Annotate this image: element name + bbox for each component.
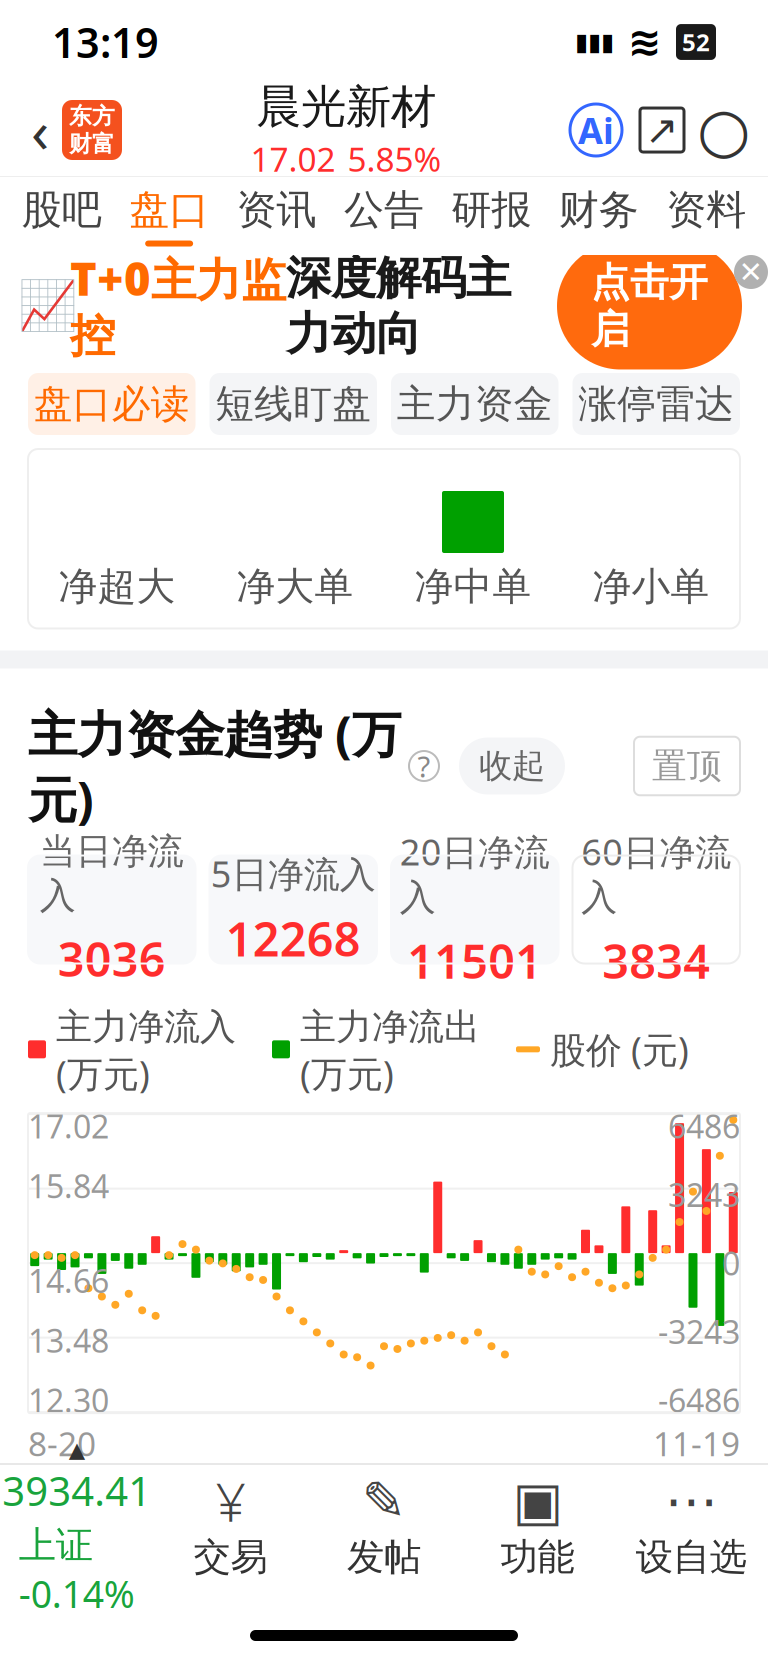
staticText: 17.02 — [28, 1105, 109, 1147]
staticText: 财务 — [559, 185, 639, 234]
staticText: T+0主力监控 — [70, 248, 286, 364]
button[interactable]: 股吧 — [8, 177, 115, 255]
staticText: 盘口 — [129, 185, 209, 234]
staticText: 功能 — [501, 1534, 575, 1580]
staticText: ○ — [697, 95, 751, 165]
staticText: 资讯 — [237, 185, 317, 234]
button[interactable]: 关闭广告 — [734, 255, 768, 289]
staticText: 52 — [682, 26, 710, 58]
staticText: 3036 — [58, 928, 166, 990]
staticText: -3243 — [658, 1310, 740, 1353]
staticText: 置顶 — [652, 1552, 722, 1595]
staticText: 主力净流入 (万元) — [56, 1001, 236, 1097]
staticText: 12.30 — [28, 1379, 109, 1421]
staticText: ▣ — [513, 1471, 563, 1531]
button[interactable]: AI 助手 — [570, 104, 622, 156]
staticText: 6486 — [668, 1105, 740, 1147]
staticText: 公告 — [344, 185, 424, 234]
staticText: 涨停雷达 — [578, 380, 734, 428]
staticText: -6486 — [658, 1379, 740, 1421]
staticText: ▲ — [69, 1438, 85, 1462]
button[interactable]: 公告 — [330, 177, 438, 255]
button[interactable]: 60日净流入 — [572, 855, 740, 963]
staticText: 发帖 — [347, 1534, 421, 1580]
staticText: 深度解码主力动向 — [286, 250, 511, 362]
staticText: 8-20 — [28, 1421, 96, 1465]
staticText: 11-19 — [653, 1421, 740, 1465]
staticText: ⋯ — [665, 1471, 718, 1531]
staticText: 5日净流入 — [211, 850, 376, 897]
staticText: 3934.41 — [2, 1464, 151, 1517]
staticText: 晨光新材 — [256, 79, 436, 135]
staticText: 11501 — [407, 929, 542, 991]
button[interactable]: 资料 — [653, 177, 760, 255]
staticText: 资料 — [666, 185, 746, 234]
staticText: 设自选 — [636, 1534, 747, 1580]
staticText: 3834 — [602, 929, 710, 991]
staticText: 📈 — [18, 279, 78, 333]
staticText: 成交明细 — [28, 1543, 224, 1604]
staticText: 13:19 — [52, 15, 159, 69]
staticText: 上证 -0.14% — [19, 1519, 135, 1618]
button[interactable]: 东方财富 — [62, 100, 122, 160]
button[interactable]: 主力资金 — [391, 373, 558, 435]
staticText: ¥ — [215, 1466, 245, 1536]
button[interactable]: 盘口必读 — [28, 373, 195, 435]
button[interactable]: ▲ — [0, 1438, 154, 1618]
staticText: 净中单 — [414, 563, 531, 610]
button[interactable]: 资讯 — [223, 177, 330, 255]
staticText: 净超大 — [58, 563, 175, 610]
staticText: 财富 — [69, 130, 115, 158]
button[interactable]: 当日净流入 — [28, 855, 195, 963]
staticText: 主力资金 — [397, 380, 553, 428]
staticText: 短线盯盘 — [215, 380, 371, 428]
staticText: ‹ — [31, 91, 49, 169]
staticText: 13.48 — [28, 1319, 109, 1362]
staticText: ? — [417, 746, 430, 785]
button[interactable]: 盘口 — [115, 177, 223, 255]
button[interactable]: 财务 — [545, 177, 652, 255]
button[interactable]: ¥ — [154, 1476, 307, 1580]
staticText: ▮▮▮ — [575, 28, 614, 56]
staticText: 收起 — [479, 745, 545, 786]
button[interactable]: ▣ — [461, 1476, 614, 1580]
staticText: 净小单 — [592, 563, 709, 610]
button[interactable]: ⋯ — [614, 1476, 768, 1580]
button[interactable]: 分享 — [640, 108, 684, 152]
staticText: 盘口必读 — [34, 380, 190, 428]
staticText: 研报 — [451, 185, 531, 234]
button[interactable]: 研报 — [438, 177, 545, 255]
staticText: 当日净流入 — [40, 829, 184, 918]
button[interactable]: 涨停雷达 — [572, 373, 740, 435]
button[interactable]: 返回 — [18, 100, 62, 160]
staticText: 12268 — [226, 907, 361, 969]
staticText: ✕ — [738, 255, 763, 289]
button[interactable]: 5日净流入 — [209, 855, 377, 963]
button[interactable]: 置顶 — [634, 1544, 740, 1603]
button[interactable]: 短线盯盘 — [209, 373, 377, 435]
staticText: 净大单 — [236, 563, 353, 610]
staticText: 主力资金趋势 (万元) — [28, 700, 401, 831]
staticText: 交易 — [193, 1534, 267, 1580]
button[interactable]: ✎ — [307, 1476, 461, 1580]
staticText: 东方 — [69, 102, 115, 130]
staticText: 成交价 — [287, 1638, 404, 1663]
staticText: 3243 — [668, 1173, 740, 1216]
staticText: Ai — [578, 106, 614, 154]
staticText: 14.66 — [28, 1259, 109, 1302]
button[interactable]: 搜索 — [698, 104, 750, 156]
staticText: 15.84 — [28, 1165, 109, 1207]
staticText: 主力净流出 (万元) — [300, 1001, 480, 1097]
staticText: 60日净流入 — [581, 827, 731, 919]
button[interactable]: 20日净流入 — [391, 855, 558, 963]
staticText: 置顶 — [652, 745, 722, 787]
button[interactable]: 收起 — [459, 737, 565, 794]
button[interactable]: 点击开启 — [557, 242, 742, 369]
staticText: ≋ — [628, 19, 662, 65]
button[interactable]: 置顶 — [634, 737, 740, 795]
staticText: 20日净流入 — [400, 827, 550, 919]
staticText: ✎ — [361, 1471, 406, 1531]
